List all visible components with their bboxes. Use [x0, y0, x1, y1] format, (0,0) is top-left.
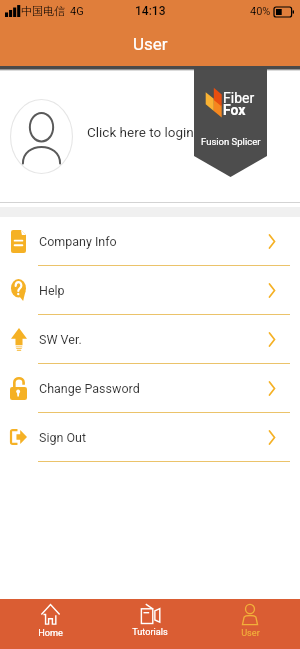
button[interactable]: Change Password — [0, 364, 300, 413]
staticText: Tutorials — [132, 626, 168, 637]
staticText: Fox — [223, 102, 246, 118]
staticText: Fusion Splicer — [201, 136, 261, 147]
staticText: Sign Out — [39, 430, 87, 445]
button[interactable]: Help — [0, 266, 300, 315]
button[interactable]: SW Ver. — [0, 315, 300, 364]
staticText: Home — [38, 627, 63, 638]
staticText: User — [133, 34, 168, 54]
staticText: Fiber — [223, 90, 255, 106]
button[interactable]: Tutorials — [100, 599, 200, 649]
staticText: 40% — [250, 5, 271, 18]
staticText: SW Ver. — [39, 332, 82, 347]
button[interactable]: Company Info — [0, 217, 300, 266]
staticText: Help — [39, 283, 65, 298]
staticText: 中国电信 — [21, 4, 65, 18]
staticText: User — [241, 627, 260, 638]
staticText: Change Password — [39, 381, 140, 396]
button[interactable]: Click here to login — [87, 124, 194, 140]
button[interactable]: User — [200, 599, 300, 649]
staticText: Company Info — [39, 234, 117, 249]
button[interactable]: Sign Out — [0, 413, 300, 462]
button[interactable]: Home — [0, 599, 100, 649]
staticText: 4G — [70, 5, 84, 18]
staticText: 14:13 — [135, 4, 166, 18]
